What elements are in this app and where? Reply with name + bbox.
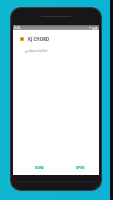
- button[interactable]: DONE: [32, 164, 47, 172]
- staticText: DONE: [35, 166, 44, 170]
- staticText: App installed: [29, 49, 48, 53]
- staticText: OPEN: [76, 166, 85, 170]
- button[interactable]: OPEN: [73, 164, 88, 172]
- staticText: 9:02: [14, 26, 21, 30]
- staticText: •• ▲ ▮: [89, 26, 98, 30]
- staticText: KJ CHORD: [28, 36, 50, 42]
